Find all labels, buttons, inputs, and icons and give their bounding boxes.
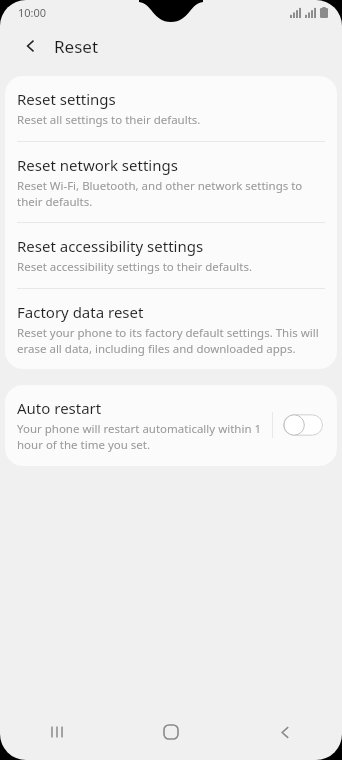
staticText: Auto restart — [17, 398, 102, 418]
staticText: Your phone will restart automatically wi… — [17, 421, 272, 452]
staticText: Reset Wi-Fi, Bluetooth, and other networ… — [17, 178, 323, 209]
staticText: Reset settings — [17, 89, 116, 109]
staticText: Reset your phone to its factory default … — [17, 325, 323, 356]
staticText: Reset network settings — [17, 155, 178, 175]
button[interactable]: Back — [228, 704, 342, 760]
staticText: Reset — [54, 35, 99, 58]
staticText: Reset all settings to their defaults. — [17, 112, 201, 128]
staticText: Reset accessibility settings to their de… — [17, 259, 252, 275]
button[interactable]: Recents — [0, 704, 114, 760]
staticText: 10:00 — [18, 5, 47, 20]
staticText: Reset accessibility settings — [17, 236, 204, 256]
button[interactable]: Reset network settings — [5, 142, 337, 222]
button[interactable]: Reset accessibility settings — [5, 223, 337, 288]
button[interactable]: Auto restart — [5, 385, 337, 466]
staticText: Factory data reset — [17, 302, 144, 322]
button[interactable]: Auto restart toggle — [283, 412, 323, 438]
button[interactable]: Reset settings — [5, 76, 337, 141]
button[interactable]: Home — [114, 704, 228, 760]
button[interactable]: Back — [14, 29, 48, 63]
button[interactable]: Factory data reset — [5, 289, 337, 369]
